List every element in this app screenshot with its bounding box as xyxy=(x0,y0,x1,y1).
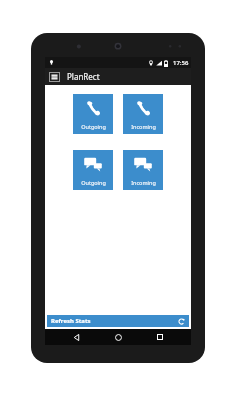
button[interactable]: Outgoing xyxy=(73,150,113,190)
button[interactable]: Refresh Stats xyxy=(47,315,189,327)
staticText: Incoming xyxy=(131,179,156,186)
button[interactable]: Home xyxy=(107,329,129,345)
button[interactable]: Incoming xyxy=(123,94,163,134)
staticText: Refresh Stats xyxy=(51,317,91,325)
button[interactable]: Back xyxy=(65,329,87,345)
staticText: Incoming xyxy=(131,123,156,130)
button[interactable]: Incoming xyxy=(123,150,163,190)
staticText: PlanRect xyxy=(67,71,100,82)
button[interactable]: Recent apps xyxy=(149,329,171,345)
staticText: Outgoing xyxy=(81,123,106,130)
staticText: Outgoing xyxy=(81,179,106,186)
button[interactable]: Outgoing xyxy=(73,94,113,134)
staticText: 17:56 xyxy=(173,59,189,67)
other: Refresh xyxy=(178,318,185,325)
button[interactable]: Open navigation menu xyxy=(49,72,60,82)
